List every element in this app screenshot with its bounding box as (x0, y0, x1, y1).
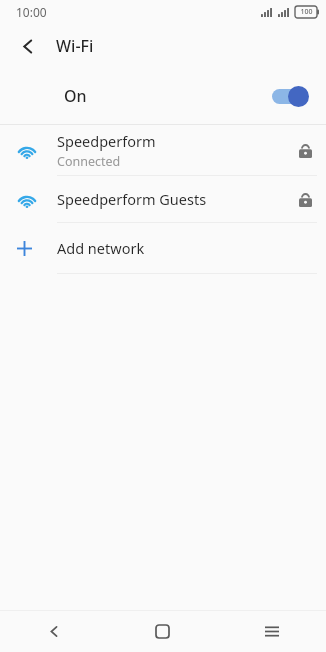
staticText: Speedperform (57, 131, 156, 151)
button[interactable]: Speedperform (0, 125, 326, 175)
other: Secured network (299, 143, 312, 158)
button[interactable]: Add network (0, 223, 326, 273)
button[interactable]: Back (10, 28, 46, 64)
button[interactable]: On (0, 68, 326, 124)
staticText: Connected (57, 153, 121, 170)
staticText: Wi-Fi (56, 35, 94, 57)
other: Wi-Fi toggle (271, 85, 309, 107)
staticText: Add network (57, 238, 145, 258)
staticText: On (64, 85, 87, 107)
button[interactable]: Back (0, 611, 108, 652)
staticText: 10:00 (16, 4, 47, 20)
staticText: 100 (300, 7, 313, 17)
button[interactable]: Speedperform Guests (0, 176, 326, 222)
button[interactable]: Recent apps (217, 611, 326, 652)
other: Secured network (299, 192, 312, 207)
staticText: Speedperform Guests (57, 189, 207, 209)
button[interactable]: Home (108, 611, 217, 652)
